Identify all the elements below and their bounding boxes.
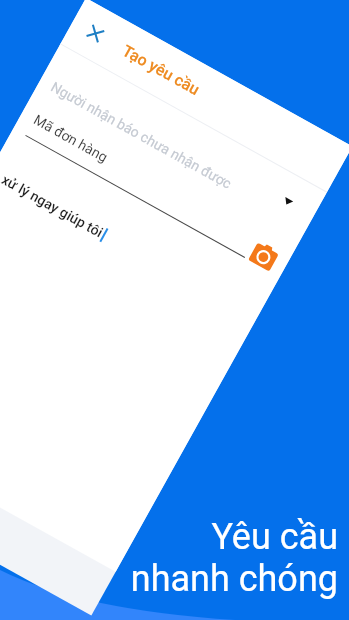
staticText: Người nhận báo chưa nhận được	[48, 79, 234, 192]
staticText: xử lý ngay giúp tôi	[0, 171, 106, 241]
button[interactable]: Close	[78, 17, 112, 51]
button[interactable]: Dropdown	[275, 189, 300, 214]
staticText: Yêu cầu nhanh chóng	[130, 516, 338, 600]
staticText: Mã đơn hàng	[31, 111, 110, 165]
button[interactable]: Attach photo	[248, 240, 280, 272]
staticText: Tạo yêu cầu	[119, 41, 204, 99]
